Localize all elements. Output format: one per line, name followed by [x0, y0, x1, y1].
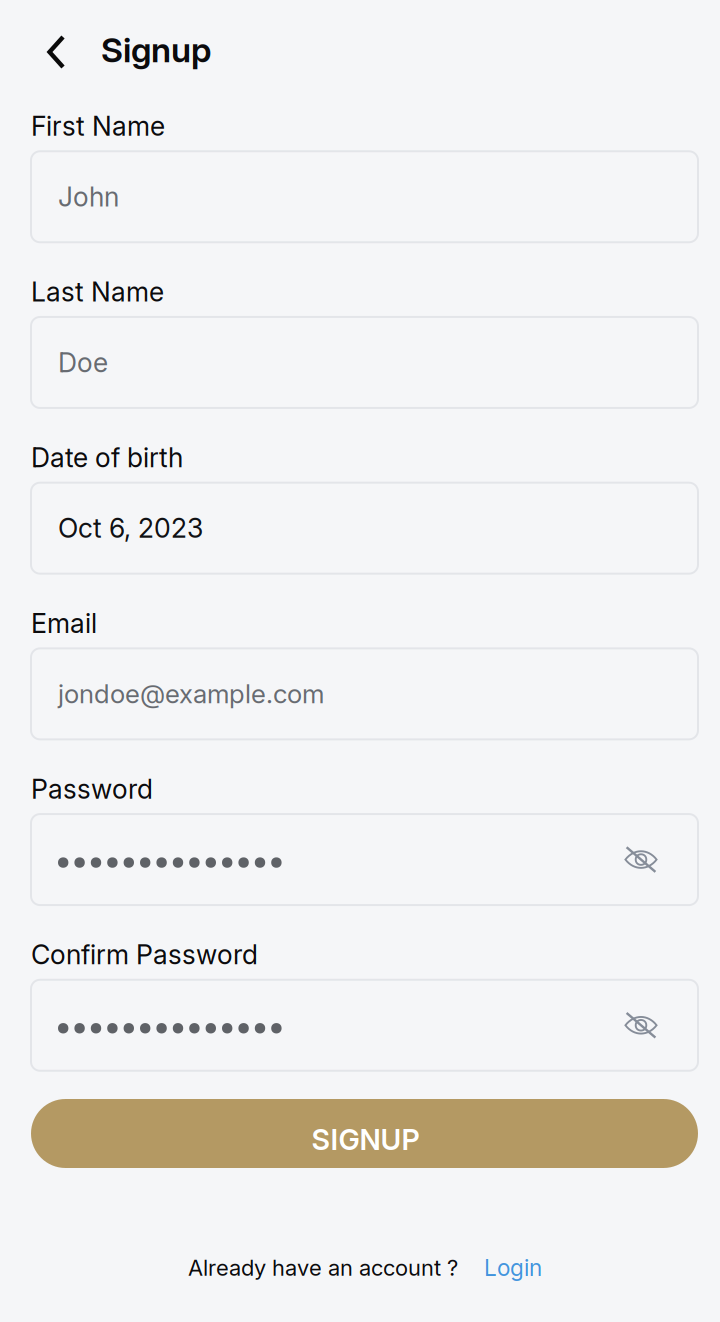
- button[interactable]: SIGNUP: [31, 1099, 698, 1168]
- button[interactable]: Back: [31, 24, 81, 80]
- staticText: Password: [31, 773, 153, 805]
- staticText: Login: [484, 1254, 542, 1281]
- button[interactable]: Last Name: [31, 317, 698, 408]
- staticText: jondoe@example.com: [58, 678, 324, 710]
- button[interactable]: First Name: [31, 151, 698, 242]
- staticText: Doe: [58, 346, 108, 379]
- staticText: Date of birth: [31, 441, 183, 474]
- staticText: First Name: [31, 110, 165, 142]
- button[interactable]: Email: [31, 648, 698, 739]
- staticText: Oct 6, 2023: [58, 512, 203, 544]
- staticText: Last Name: [31, 276, 164, 308]
- staticText: Already have an account ?: [188, 1254, 458, 1281]
- staticText: SIGNUP: [311, 1122, 419, 1157]
- staticText: Email: [31, 607, 97, 639]
- staticText: Signup: [101, 29, 211, 70]
- button[interactable]: Date of birth: [31, 483, 698, 574]
- button[interactable]: Show confirm password: [624, 1012, 698, 1039]
- button[interactable]: Password: [31, 814, 698, 905]
- button[interactable]: Confirm Password: [31, 980, 698, 1071]
- staticText: Confirm Password: [31, 938, 258, 971]
- staticText: John: [58, 181, 119, 213]
- button[interactable]: Show password: [624, 846, 698, 873]
- button[interactable]: Login: [484, 1254, 542, 1281]
